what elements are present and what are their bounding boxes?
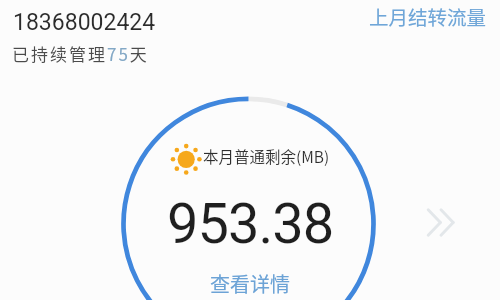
staticText: 953.38 (167, 191, 334, 257)
staticText: 已持续管理75天 (12, 41, 149, 66)
button[interactable]: 上月结转流量 (364, 0, 492, 34)
staticText: 本月普通剩余(MB) (203, 145, 330, 167)
button[interactable]: More (424, 203, 462, 241)
staticText: 上月结转流量 (369, 2, 487, 30)
staticText: 18368002424 (13, 9, 156, 36)
staticText: 查看详情 (210, 269, 290, 298)
button[interactable]: 查看详情 (205, 265, 295, 300)
